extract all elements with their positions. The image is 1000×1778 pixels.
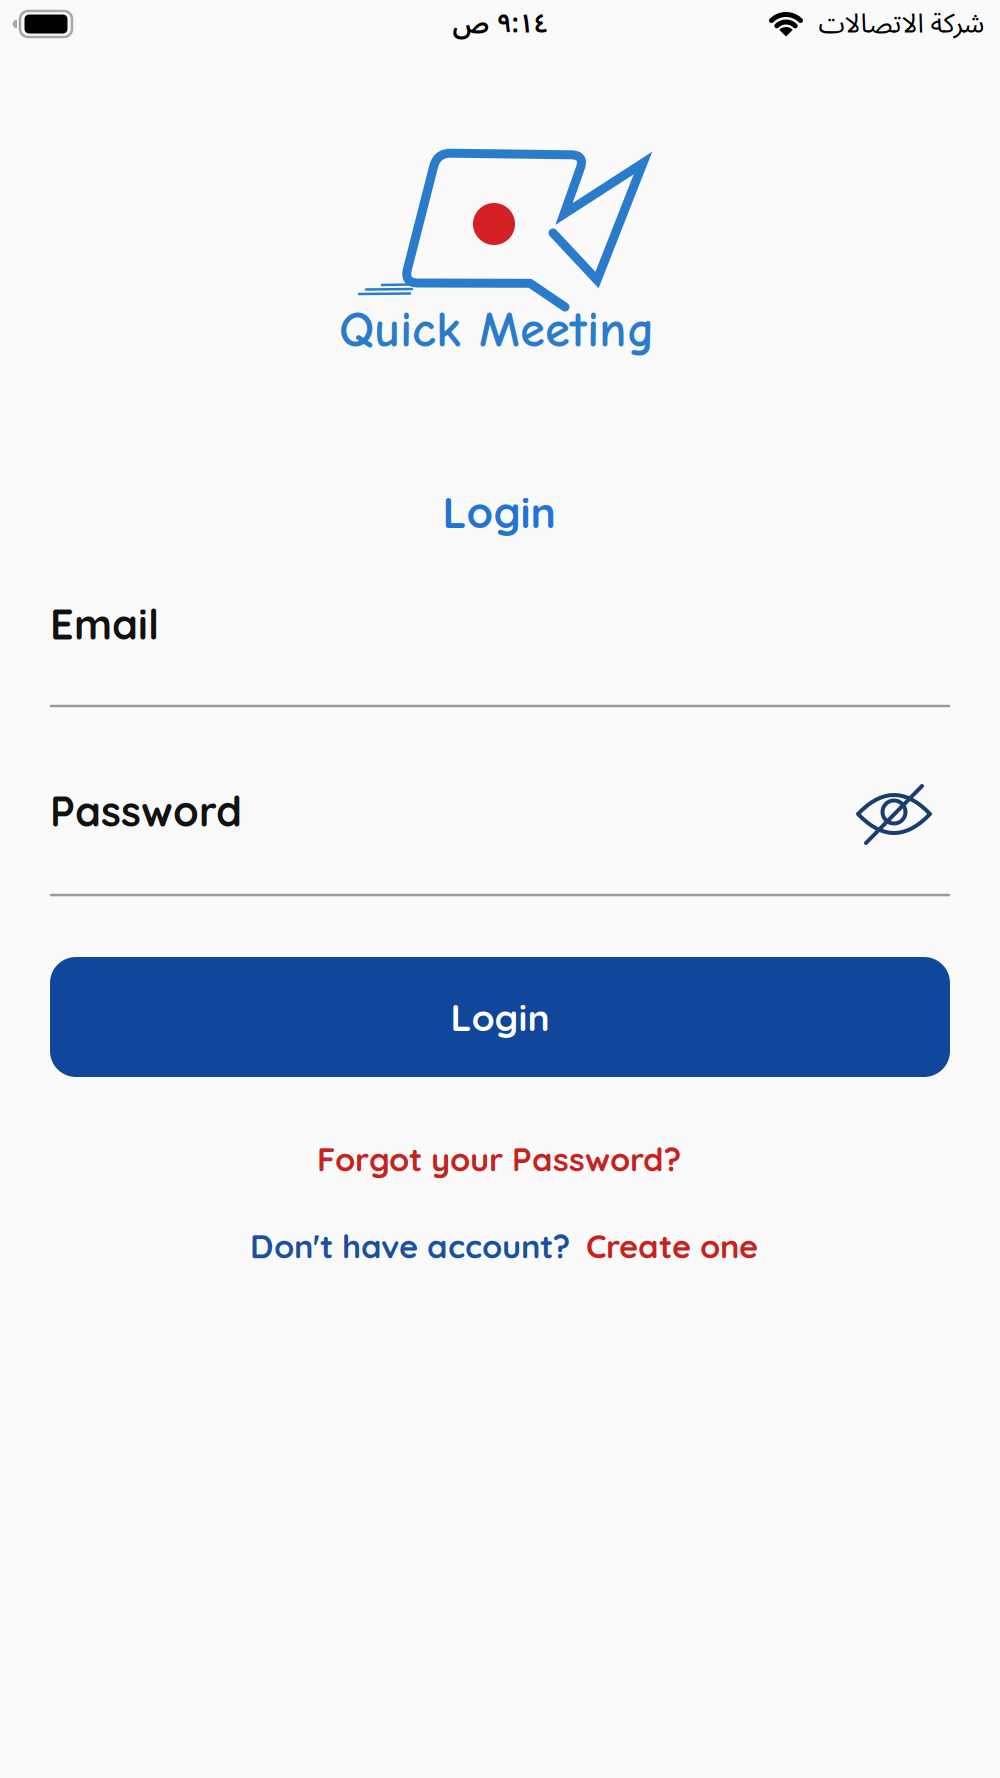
staticText: شركة الاتصالات: [818, 0, 984, 52]
staticText: Password: [50, 785, 242, 837]
staticText: Login: [442, 485, 555, 539]
staticText: Create one: [586, 1226, 758, 1266]
staticText: Login: [450, 994, 549, 1040]
button[interactable]: Create one: [586, 1226, 758, 1266]
staticText: Quick Meeting: [339, 301, 655, 359]
staticText: Forgot your Password?: [317, 1139, 681, 1179]
staticText: ٩:١٤ ص: [452, 0, 548, 52]
button[interactable]: Show password: [854, 778, 934, 850]
staticText: Email: [50, 598, 159, 650]
button[interactable]: Forgot your Password?: [317, 1139, 681, 1179]
staticText: Don't have account?: [250, 1226, 570, 1266]
button[interactable]: Login: [50, 957, 950, 1077]
